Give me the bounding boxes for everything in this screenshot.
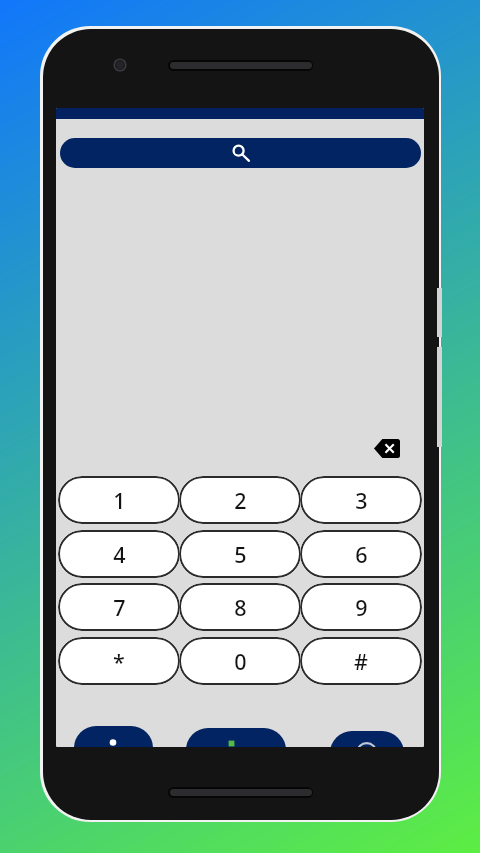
- button[interactable]: Keypad: [186, 728, 286, 747]
- button[interactable]: 1: [58, 476, 180, 524]
- button[interactable]: 7: [58, 583, 180, 631]
- button[interactable]: 0: [179, 637, 301, 685]
- staticText: *: [113, 647, 125, 676]
- staticText: 4: [113, 540, 126, 569]
- staticText: 2: [234, 486, 247, 515]
- button[interactable]: *: [58, 637, 180, 685]
- button[interactable]: 8: [179, 583, 301, 631]
- staticText: #: [354, 647, 368, 676]
- staticText: 5: [234, 540, 247, 569]
- button[interactable]: 2: [179, 476, 301, 524]
- staticText: 6: [355, 540, 368, 569]
- button[interactable]: Recents: [330, 731, 404, 747]
- staticText: 8: [234, 593, 247, 622]
- staticText: 7: [113, 593, 126, 622]
- button[interactable]: 9: [300, 583, 422, 631]
- staticText: 0: [234, 647, 247, 676]
- button[interactable]: 6: [300, 530, 422, 578]
- staticText: 3: [355, 486, 368, 515]
- staticText: 1: [113, 486, 126, 515]
- button[interactable]: Search: [60, 138, 421, 168]
- button[interactable]: #: [300, 637, 422, 685]
- staticText: 9: [355, 593, 368, 622]
- button[interactable]: Contacts: [74, 726, 153, 747]
- button[interactable]: 4: [58, 530, 180, 578]
- button[interactable]: Backspace: [374, 439, 400, 458]
- button[interactable]: 5: [179, 530, 301, 578]
- button[interactable]: 3: [300, 476, 422, 524]
